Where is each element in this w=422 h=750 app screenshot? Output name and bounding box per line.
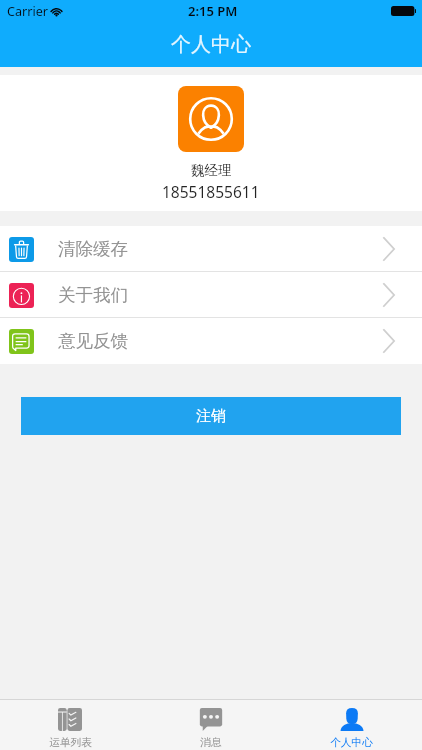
staticText: 关于我们 [58,284,128,306]
other: Open 关于我们 [383,283,395,307]
button[interactable]: 注销 [21,397,401,435]
staticText: 18551855611 [162,181,260,202]
staticText: 消息 [200,736,222,749]
staticText: Carrier [7,3,48,20]
staticText: 2:15 PM [188,2,238,20]
staticText: 魏经理 [191,162,232,179]
staticText: 个人中心 [330,736,373,749]
staticText: 清除缓存 [58,238,128,260]
button[interactable]: 运单列表 [0,699,140,750]
button[interactable]: 关于我们 [0,272,422,318]
staticText: 注销 [196,407,226,426]
other: Avatar [178,86,244,152]
staticText: 个人中心 [171,32,251,57]
button[interactable]: 个人中心 [281,699,422,750]
staticText: 运单列表 [49,736,92,749]
button[interactable]: 意见反馈 [0,318,422,364]
staticText: 意见反馈 [58,330,128,352]
button[interactable]: 清除缓存 [0,226,422,272]
other: Open 清除缓存 [383,237,395,261]
other: Open 意见反馈 [383,329,395,353]
button[interactable]: 消息 [140,699,281,750]
